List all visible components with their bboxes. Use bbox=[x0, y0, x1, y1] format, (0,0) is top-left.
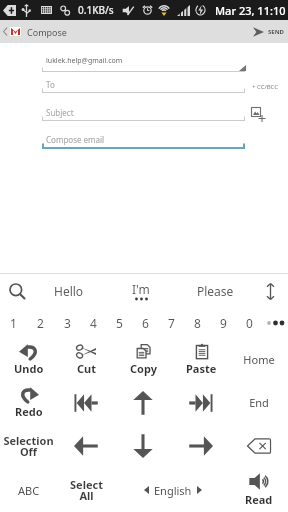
button[interactable]: To bbox=[42, 79, 244, 92]
button[interactable]: Please bbox=[178, 274, 252, 308]
button[interactable]: Paste bbox=[172, 338, 230, 381]
button[interactable]: SEND bbox=[247, 20, 288, 43]
button[interactable]: Subject bbox=[42, 107, 244, 120]
button[interactable]: Attach image bbox=[247, 103, 271, 127]
button[interactable]: Next word bbox=[172, 381, 230, 424]
button[interactable]: Navigate up bbox=[0, 20, 80, 43]
button[interactable]: Move left bbox=[57, 424, 114, 468]
button[interactable]: 9 bbox=[210, 308, 236, 338]
staticText: 1 bbox=[10, 315, 17, 331]
staticText: I'm bbox=[132, 281, 150, 297]
button[interactable]: Move down bbox=[114, 424, 172, 468]
staticText: 5 bbox=[116, 315, 123, 331]
staticText: 6 bbox=[142, 315, 149, 331]
staticText: Select All bbox=[70, 477, 103, 504]
button[interactable]: 3 bbox=[54, 308, 80, 338]
staticText: Compose email bbox=[46, 134, 105, 145]
staticText: Home bbox=[243, 352, 275, 367]
button[interactable]: Copy bbox=[114, 338, 172, 381]
staticText: 0 bbox=[246, 315, 253, 331]
staticText: Mar 23, 11:10 bbox=[215, 3, 286, 18]
staticText: Selection Off bbox=[3, 433, 54, 460]
button[interactable]: Backspace bbox=[230, 424, 288, 468]
button[interactable]: Search bbox=[0, 274, 34, 308]
staticText: 9 bbox=[220, 315, 227, 331]
button[interactable]: luklek.help@gmail.com bbox=[42, 56, 244, 70]
staticText: 8 bbox=[194, 315, 201, 331]
staticText: SEND bbox=[268, 28, 284, 36]
button[interactable]: Hello bbox=[34, 274, 104, 308]
staticText: End bbox=[249, 395, 269, 410]
staticText: Please bbox=[197, 283, 234, 299]
staticText: Cut bbox=[77, 361, 96, 376]
staticText: Undo bbox=[14, 361, 44, 376]
button[interactable]: Redo bbox=[0, 381, 57, 424]
button[interactable]: ABC bbox=[0, 468, 57, 512]
button[interactable]: 7 bbox=[158, 308, 184, 338]
button[interactable]: 2 bbox=[27, 308, 54, 338]
staticText: English bbox=[154, 483, 192, 498]
button[interactable]: Read bbox=[230, 468, 288, 512]
button[interactable]: 5 bbox=[106, 308, 132, 338]
staticText: 3 bbox=[64, 315, 71, 331]
button[interactable]: I'm bbox=[104, 274, 178, 308]
staticText: 2 bbox=[37, 315, 44, 331]
button[interactable]: 0 bbox=[236, 308, 262, 338]
staticText: luklek.help@gmail.com bbox=[46, 56, 123, 66]
staticText: 7 bbox=[168, 315, 175, 331]
staticText: Redo bbox=[15, 404, 43, 419]
button[interactable]: 6 bbox=[132, 308, 158, 338]
staticText: ABC bbox=[18, 483, 40, 498]
staticText: Paste bbox=[186, 361, 217, 376]
button[interactable]: Selection Off bbox=[0, 424, 57, 468]
button[interactable]: 1 bbox=[0, 308, 27, 338]
staticText: 4 bbox=[90, 315, 97, 331]
button[interactable]: More symbols bbox=[262, 308, 288, 338]
staticText: + CC/BCC bbox=[252, 83, 279, 91]
button[interactable]: 4 bbox=[80, 308, 106, 338]
button[interactable]: 8 bbox=[184, 308, 210, 338]
button[interactable]: + CC/BCC bbox=[250, 81, 281, 93]
button[interactable]: Cut bbox=[57, 338, 114, 381]
staticText: Read bbox=[245, 492, 273, 507]
button[interactable]: Home bbox=[230, 338, 288, 381]
button[interactable]: Compose email bbox=[42, 134, 244, 147]
button[interactable]: English bbox=[115, 468, 230, 512]
button[interactable]: Move up bbox=[114, 381, 172, 424]
staticText: Copy bbox=[130, 361, 157, 376]
staticText: To bbox=[46, 79, 55, 90]
button[interactable]: Select All bbox=[57, 468, 115, 512]
button[interactable]: End bbox=[230, 381, 288, 424]
button[interactable]: Expand keyboard bbox=[252, 274, 288, 308]
staticText: Hello bbox=[54, 283, 84, 299]
button[interactable]: Move right bbox=[172, 424, 230, 468]
staticText: Subject bbox=[46, 107, 74, 118]
staticText: Compose bbox=[27, 26, 67, 38]
staticText: 0.1KB/s bbox=[78, 3, 114, 17]
button[interactable]: Undo bbox=[0, 338, 57, 381]
button[interactable]: Previous word bbox=[57, 381, 114, 424]
